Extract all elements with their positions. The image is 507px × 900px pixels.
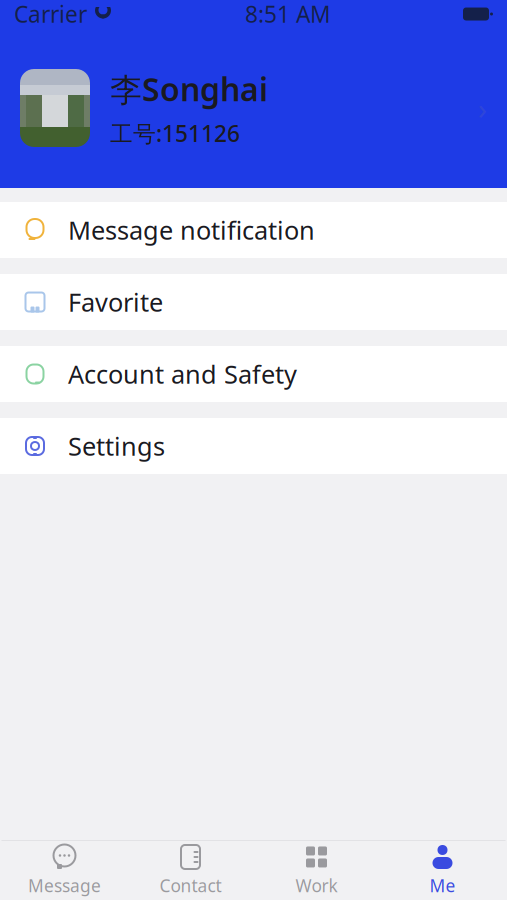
staticText: Message notification: [68, 213, 315, 247]
staticText: Carrier: [14, 0, 87, 29]
staticText: ›: [478, 88, 487, 127]
staticText: Work: [295, 874, 337, 897]
staticText: 李Songhai: [110, 68, 268, 110]
button[interactable]: 李Songhai: [0, 28, 507, 188]
staticText: 8:51 AM: [245, 0, 331, 29]
staticText: Message: [28, 874, 101, 897]
button[interactable]: Contact: [127, 841, 253, 899]
button[interactable]: Work: [253, 841, 379, 899]
staticText: Settings: [68, 429, 165, 463]
button[interactable]: Message notification: [0, 202, 507, 258]
staticText: Account and Safety: [68, 357, 297, 391]
staticText: Favorite: [68, 285, 163, 319]
button[interactable]: Settings: [0, 418, 507, 474]
staticText: Contact: [159, 874, 221, 897]
staticText: 工号:151126: [110, 118, 240, 148]
button[interactable]: Account and Safety: [0, 346, 507, 402]
button[interactable]: Favorite: [0, 274, 507, 330]
button[interactable]: Message: [1, 841, 127, 899]
staticText: Me: [429, 874, 455, 897]
button[interactable]: Me: [379, 841, 505, 899]
